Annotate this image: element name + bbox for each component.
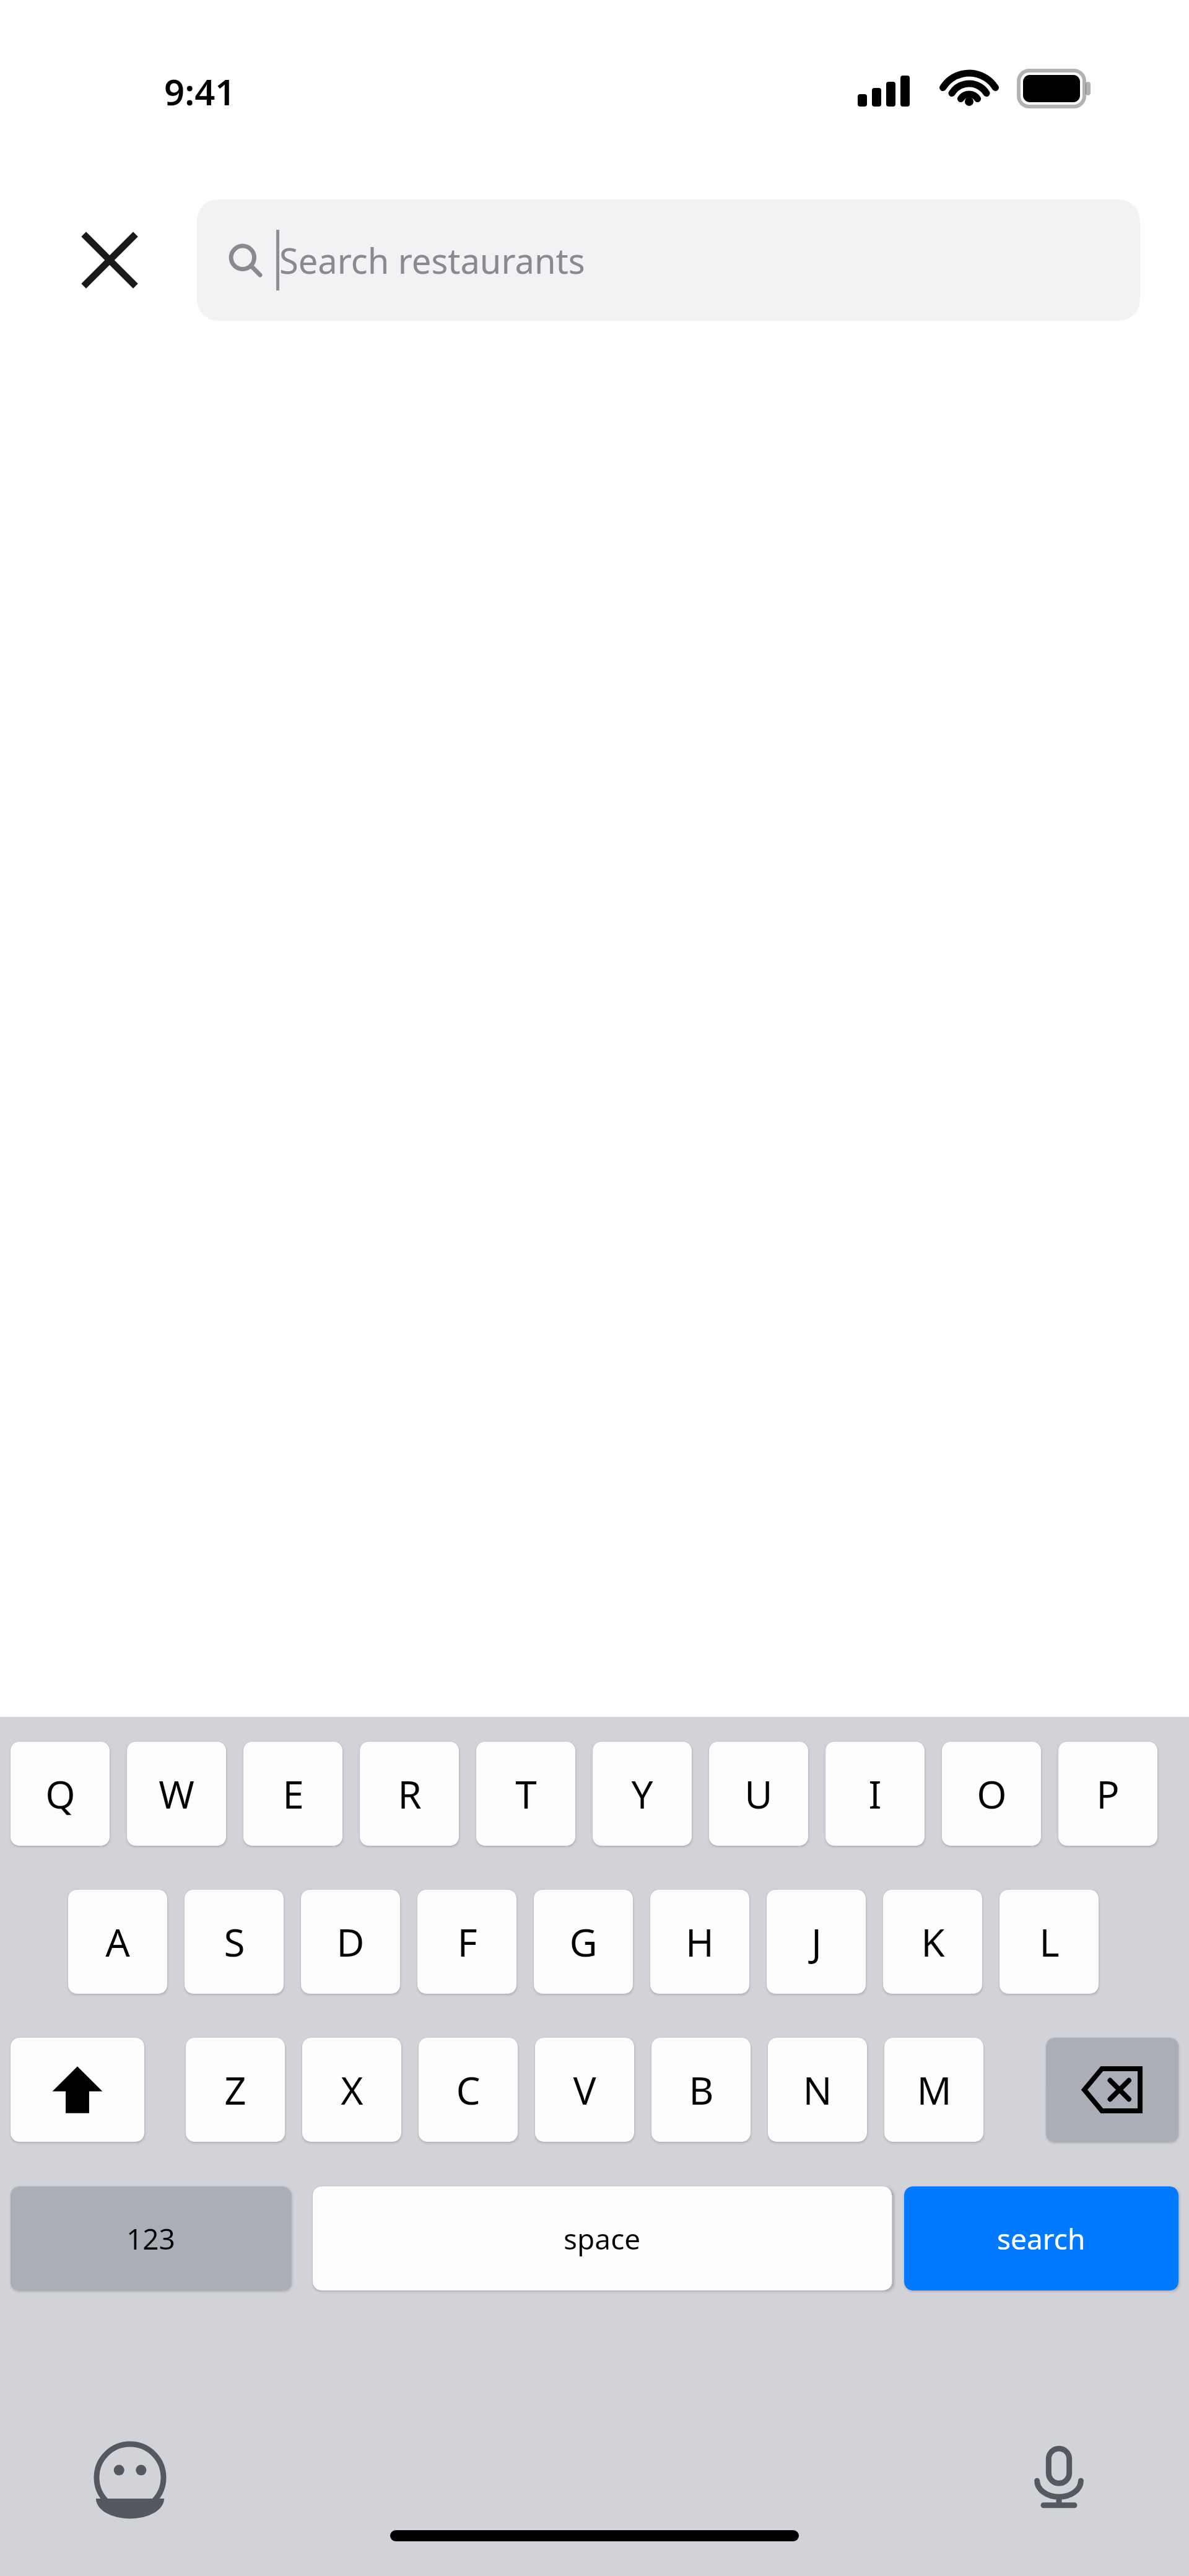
button[interactable]: T	[476, 1742, 575, 1846]
staticText: F	[457, 1916, 477, 1968]
staticText: Z	[224, 2064, 246, 2116]
staticText: N	[803, 2064, 832, 2116]
staticText: search	[997, 2219, 1086, 2258]
button[interactable]: E	[243, 1742, 342, 1846]
button[interactable]: D	[301, 1890, 400, 1994]
button[interactable]: Z	[186, 2038, 285, 2142]
staticText: K	[921, 1916, 945, 1968]
button[interactable]: V	[535, 2038, 634, 2142]
button[interactable]: Emoji	[87, 2434, 173, 2521]
staticText: O	[977, 1768, 1007, 1820]
staticText: G	[569, 1916, 598, 1968]
button[interactable]: Backspace	[1046, 2038, 1178, 2142]
staticText: Y	[631, 1768, 653, 1820]
staticText: P	[1096, 1768, 1120, 1820]
staticText: J	[811, 1916, 822, 1968]
button[interactable]: L	[1000, 1890, 1099, 1994]
button[interactable]: A	[68, 1890, 167, 1994]
staticText: R	[398, 1768, 422, 1820]
staticText: E	[282, 1768, 304, 1820]
button[interactable]: Numbers	[11, 2186, 291, 2290]
staticText: M	[917, 2064, 952, 2116]
staticText: Search restaurants	[279, 237, 585, 284]
staticText: D	[336, 1916, 365, 1968]
button[interactable]: R	[360, 1742, 459, 1846]
staticText: U	[744, 1768, 773, 1820]
button[interactable]: F	[417, 1890, 516, 1994]
button[interactable]: P	[1058, 1742, 1157, 1846]
button[interactable]: B	[651, 2038, 751, 2142]
staticText: 123	[126, 2219, 175, 2258]
staticText: I	[868, 1768, 882, 1820]
staticText: Q	[45, 1768, 76, 1820]
button[interactable]: Q	[11, 1742, 110, 1846]
button[interactable]: X	[302, 2038, 401, 2142]
staticText: space	[564, 2219, 641, 2258]
staticText: S	[224, 1916, 245, 1968]
button[interactable]: M	[884, 2038, 983, 2142]
staticText: T	[515, 1768, 537, 1820]
button[interactable]: W	[127, 1742, 226, 1846]
button[interactable]: Dictate	[1016, 2434, 1102, 2521]
staticText: H	[686, 1916, 714, 1968]
staticText: C	[456, 2064, 481, 2116]
button[interactable]: search	[904, 2186, 1178, 2290]
button[interactable]: I	[825, 1742, 925, 1846]
button[interactable]: space	[313, 2186, 892, 2290]
button[interactable]: J	[767, 1890, 866, 1994]
staticText: W	[159, 1768, 194, 1820]
button[interactable]: N	[768, 2038, 867, 2142]
button[interactable]: H	[650, 1890, 749, 1994]
button[interactable]: Close	[72, 223, 147, 297]
staticText: L	[1039, 1916, 1060, 1968]
button[interactable]: C	[419, 2038, 518, 2142]
staticText: 9:41	[164, 67, 236, 116]
staticText: B	[689, 2064, 714, 2116]
button[interactable]: Y	[593, 1742, 692, 1846]
button[interactable]: Shift	[11, 2038, 144, 2142]
staticText: X	[341, 2064, 364, 2116]
button[interactable]: U	[709, 1742, 808, 1846]
button[interactable]: O	[942, 1742, 1041, 1846]
button[interactable]: Search restaurants	[197, 199, 1140, 321]
staticText: A	[105, 1916, 130, 1968]
button[interactable]: K	[883, 1890, 982, 1994]
staticText: V	[573, 2064, 596, 2116]
button[interactable]: G	[534, 1890, 633, 1994]
button[interactable]: S	[185, 1890, 284, 1994]
